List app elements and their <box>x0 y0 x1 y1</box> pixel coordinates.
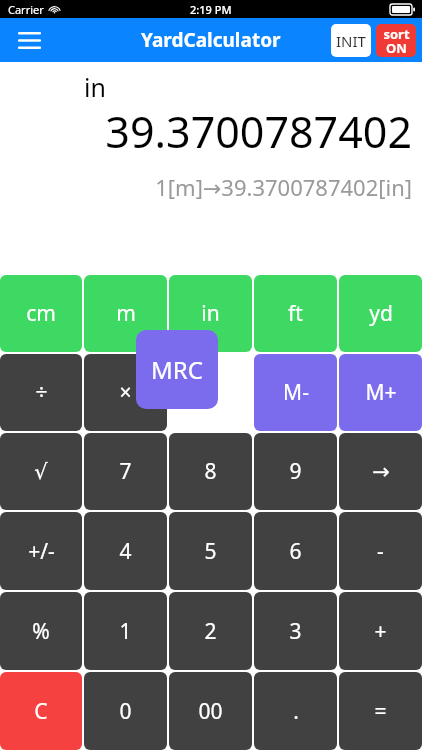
button[interactable]: = <box>339 672 422 750</box>
button[interactable]: × <box>84 354 167 431</box>
button[interactable]: M+ <box>339 354 422 431</box>
staticText: 8 <box>204 457 217 486</box>
button[interactable]: . <box>254 672 337 750</box>
staticText: 9 <box>289 457 302 486</box>
staticText: 1 <box>119 617 132 646</box>
staticText: in <box>84 70 106 104</box>
button[interactable]: Open navigation menu <box>10 21 48 59</box>
button[interactable]: yd <box>339 275 422 352</box>
staticText: 3 <box>289 617 302 646</box>
button[interactable]: % <box>0 592 82 670</box>
button[interactable]: +/- <box>0 512 82 590</box>
button[interactable]: MRC <box>136 330 218 409</box>
button[interactable]: cm <box>0 275 82 352</box>
button[interactable]: 2 <box>169 592 252 670</box>
button[interactable]: → <box>339 433 422 510</box>
button[interactable]: 9 <box>254 433 337 510</box>
staticText: 7 <box>119 457 132 486</box>
staticText: = <box>374 697 387 726</box>
staticText: INIT <box>336 31 366 51</box>
staticText: × <box>119 378 132 407</box>
staticText: +/- <box>28 537 55 566</box>
staticText: 2:19 PM <box>190 2 232 17</box>
button[interactable]: M- <box>254 354 337 431</box>
button[interactable]: in <box>169 275 252 352</box>
button[interactable]: m <box>84 275 167 352</box>
button[interactable]: 1 <box>84 592 167 670</box>
staticText: yd <box>369 299 393 328</box>
staticText: - <box>377 537 384 566</box>
staticText: m <box>116 299 136 328</box>
staticText: 6 <box>289 537 302 566</box>
staticText: M+ <box>365 378 397 407</box>
staticText: in <box>201 299 220 328</box>
staticText: sort ON <box>383 25 410 57</box>
staticText: ft <box>288 299 303 328</box>
staticText: 5 <box>204 537 217 566</box>
staticText: 2 <box>204 617 217 646</box>
staticText: Carrier <box>8 2 44 17</box>
staticText: 39.3700787402 <box>105 102 412 161</box>
staticText: cm <box>26 299 56 328</box>
staticText: . <box>293 697 299 726</box>
staticText: ÷ <box>35 378 48 407</box>
button[interactable]: ÷ <box>0 354 82 431</box>
staticText: √ <box>34 460 48 484</box>
button[interactable]: INIT <box>331 24 371 57</box>
staticText: C <box>34 697 48 726</box>
button[interactable]: 6 <box>254 512 337 590</box>
button[interactable]: ft <box>254 275 337 352</box>
button[interactable]: + <box>339 592 422 670</box>
button[interactable]: √ <box>0 433 82 510</box>
staticText: MRC <box>151 353 203 386</box>
staticText: 1[m]→39.3700787402[in] <box>155 172 412 202</box>
staticText: YardCalculator <box>141 27 281 53</box>
staticText: 00 <box>198 697 223 726</box>
button[interactable]: 5 <box>169 512 252 590</box>
staticText: 4 <box>119 537 132 566</box>
button[interactable]: - <box>339 512 422 590</box>
staticText: 0 <box>119 697 132 726</box>
button[interactable]: 00 <box>169 672 252 750</box>
button[interactable]: 8 <box>169 433 252 510</box>
button[interactable]: 4 <box>84 512 167 590</box>
staticText: → <box>372 460 390 484</box>
button[interactable]: 0 <box>84 672 167 750</box>
button[interactable]: C <box>0 672 82 750</box>
staticText: + <box>374 617 387 646</box>
staticText: % <box>32 617 50 646</box>
button[interactable]: sort ON <box>376 24 416 57</box>
button[interactable]: 3 <box>254 592 337 670</box>
staticText: M- <box>283 378 309 407</box>
button[interactable]: 7 <box>84 433 167 510</box>
